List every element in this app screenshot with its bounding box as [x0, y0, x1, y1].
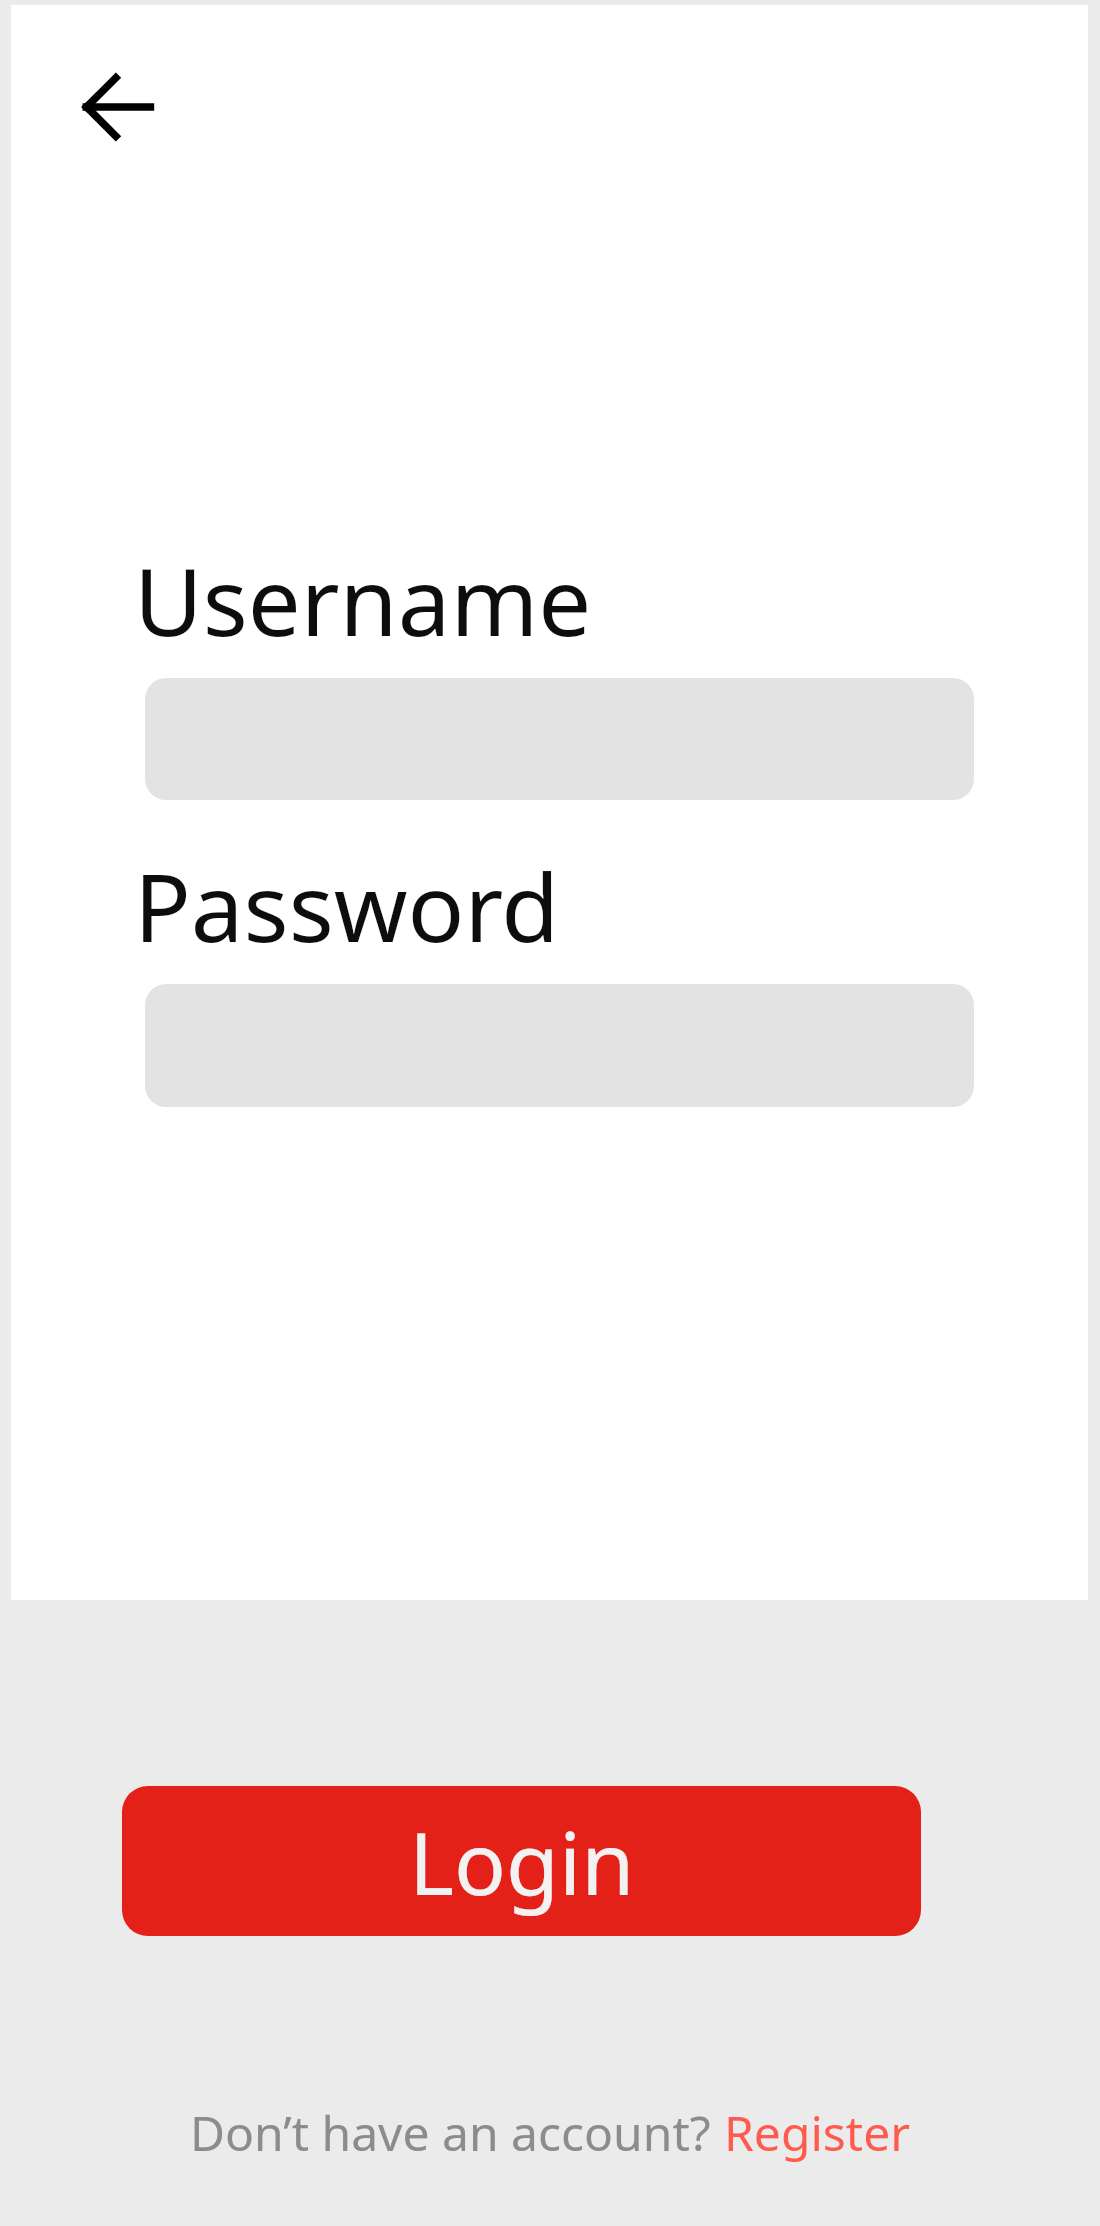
staticText: Password — [134, 842, 560, 970]
staticText: Don’t have an account? — [190, 2100, 724, 2165]
button[interactable]: Register — [724, 2100, 911, 2165]
staticText: Username — [134, 536, 592, 664]
button[interactable]: Login — [122, 1786, 921, 1936]
button[interactable]: Back — [63, 52, 173, 162]
staticText: Register — [724, 2100, 911, 2165]
staticText: Login — [409, 1803, 635, 1920]
